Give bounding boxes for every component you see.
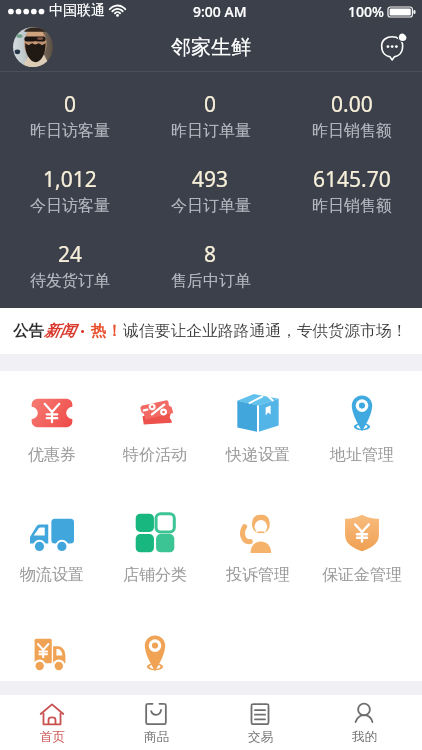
staticText: 1,012 — [43, 165, 97, 194]
staticText: 特价活动 — [123, 445, 187, 465]
staticText: 9:00 AM — [193, 2, 247, 21]
staticText: 6145.70 — [313, 165, 391, 194]
staticText: · — [80, 319, 86, 344]
button[interactable] — [103, 611, 206, 681]
staticText: 保证金管理 — [322, 565, 402, 585]
staticText: 今日订单量 — [171, 196, 251, 216]
staticText: 热！ — [91, 321, 122, 341]
button[interactable]: 地址管理 — [310, 371, 414, 491]
button[interactable]: 0 — [0, 90, 140, 141]
staticText: 待发货订单 — [30, 271, 110, 291]
staticText: 今日访客量 — [30, 196, 110, 216]
button[interactable]: 快递设置 — [206, 371, 310, 491]
button[interactable]: 店铺分类 — [103, 491, 206, 611]
staticText: 交易 — [248, 729, 273, 745]
staticText: 昨日订单量 — [171, 121, 251, 141]
button[interactable]: 特价活动 — [103, 371, 206, 491]
staticText: 地址管理 — [330, 445, 394, 465]
button[interactable]: 交易 — [208, 695, 312, 750]
button[interactable]: 优惠券 — [0, 371, 103, 491]
staticText: 快递设置 — [226, 445, 290, 465]
staticText: 中国联通 — [49, 2, 105, 20]
staticText: 我的 — [352, 729, 377, 745]
staticText: 新闻 — [44, 321, 75, 341]
staticText: 店铺分类 — [123, 565, 187, 585]
button[interactable]: 8 — [140, 240, 281, 291]
staticText: 24 — [58, 240, 83, 269]
button[interactable]: Messages — [376, 30, 410, 64]
button[interactable]: 我的 — [312, 695, 416, 750]
button[interactable]: 0 — [140, 90, 281, 141]
staticText: 493 — [192, 165, 229, 194]
button[interactable]: 保证金管理 — [310, 491, 414, 611]
button[interactable]: 投诉管理 — [206, 491, 310, 611]
staticText: 优惠券 — [28, 445, 76, 465]
button[interactable]: 公告 — [0, 308, 422, 354]
staticText: 昨日访客量 — [30, 121, 110, 141]
button[interactable]: Profile — [13, 27, 53, 67]
staticText: 公告 — [13, 321, 44, 341]
staticText: 投诉管理 — [226, 565, 290, 585]
staticText: 0.00 — [331, 90, 373, 119]
staticText: 0 — [64, 90, 77, 119]
button[interactable]: 6145.70 — [281, 165, 422, 216]
button[interactable]: 24 — [0, 240, 140, 291]
button[interactable]: 0.00 — [281, 90, 422, 141]
staticText: 100% — [348, 2, 384, 21]
staticText: 售后中订单 — [171, 271, 251, 291]
button[interactable] — [0, 611, 103, 681]
button[interactable]: 商品 — [104, 695, 208, 750]
button[interactable]: 物流设置 — [0, 491, 103, 611]
staticText: 8 — [204, 240, 217, 269]
staticText: 商品 — [144, 729, 169, 745]
button[interactable]: 首页 — [0, 695, 104, 750]
staticText: 昨日销售额 — [312, 121, 392, 141]
staticText: 物流设置 — [20, 565, 84, 585]
staticText: 邻家生鲜 — [171, 35, 251, 60]
button[interactable]: 1,012 — [0, 165, 140, 216]
staticText: 昨日销售额 — [312, 196, 392, 216]
staticText: 诚信要让企业路路通通，专供货源市场！ — [123, 321, 408, 341]
staticText: 0 — [204, 90, 217, 119]
button[interactable]: 493 — [140, 165, 281, 216]
staticText: 首页 — [40, 729, 65, 745]
